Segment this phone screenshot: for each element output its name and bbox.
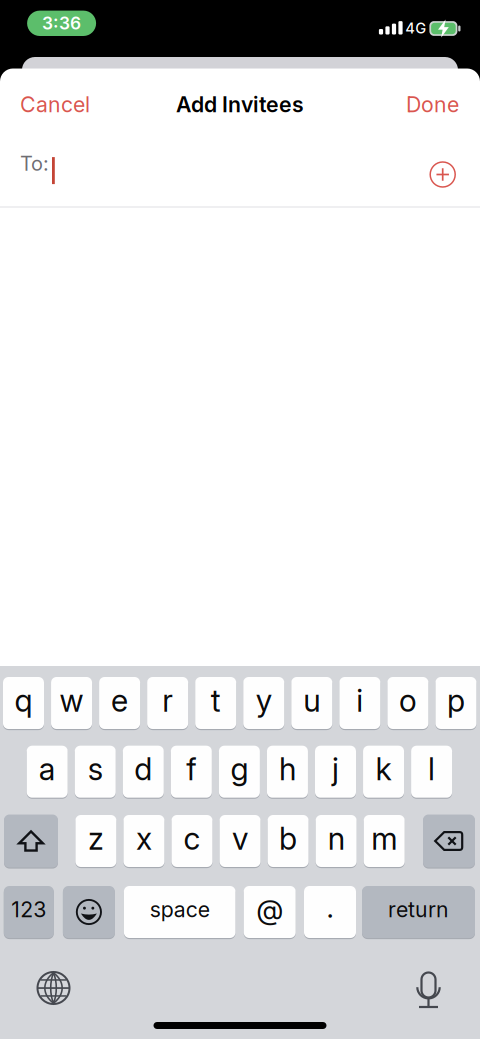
button[interactable]: f xyxy=(171,746,212,798)
staticText: o xyxy=(399,682,417,719)
button[interactable]: b xyxy=(268,815,309,867)
button[interactable]: Done xyxy=(393,82,471,126)
staticText: x xyxy=(136,820,152,857)
staticText: 123 xyxy=(11,897,46,922)
button[interactable]: Delete xyxy=(423,814,475,867)
button[interactable]: i xyxy=(339,677,380,729)
staticText: t xyxy=(211,682,221,719)
button[interactable]: p xyxy=(435,677,476,729)
staticText: n xyxy=(328,820,345,857)
staticText: l xyxy=(428,751,435,788)
button[interactable]: n xyxy=(316,815,357,867)
button[interactable]: e xyxy=(99,677,140,729)
staticText: space xyxy=(150,897,210,922)
button[interactable]: z xyxy=(75,815,116,867)
staticText: @ xyxy=(256,892,283,926)
button[interactable]: u xyxy=(291,677,332,729)
button[interactable]: return xyxy=(362,886,475,938)
staticText: w xyxy=(59,682,83,719)
staticText: Add Invitees xyxy=(176,92,304,117)
staticText: f xyxy=(186,751,196,788)
staticText: Done xyxy=(406,92,459,117)
button[interactable]: @ xyxy=(244,886,296,938)
button[interactable]: c xyxy=(171,815,212,867)
staticText: c xyxy=(183,820,200,857)
button[interactable]: Dictate xyxy=(405,962,451,1008)
button[interactable]: o xyxy=(387,677,428,729)
button[interactable]: s xyxy=(75,746,116,798)
button[interactable]: Add Invitees xyxy=(150,82,330,126)
button[interactable]: y xyxy=(243,677,284,729)
button[interactable]: j xyxy=(315,746,356,798)
staticText: i xyxy=(356,682,363,719)
button[interactable]: h xyxy=(267,746,308,798)
staticText: m xyxy=(371,820,397,857)
button[interactable]: Emoji xyxy=(63,886,115,938)
staticText: . xyxy=(326,891,333,924)
button[interactable]: r xyxy=(147,677,188,729)
button[interactable]: l xyxy=(411,746,452,798)
staticText: g xyxy=(230,751,248,788)
button[interactable]: Cancel xyxy=(12,82,98,126)
button[interactable]: . xyxy=(304,886,356,938)
staticText: p xyxy=(447,682,465,719)
staticText: j xyxy=(332,751,339,788)
button[interactable]: g xyxy=(219,746,260,798)
staticText: b xyxy=(279,820,297,857)
staticText: e xyxy=(111,682,128,719)
button[interactable]: Next keyboard xyxy=(30,965,76,1011)
button[interactable]: w xyxy=(51,677,92,729)
button[interactable]: q xyxy=(3,677,44,729)
staticText: s xyxy=(88,751,103,788)
staticText: v xyxy=(232,820,248,857)
button[interactable]: v xyxy=(219,815,260,867)
button[interactable]: Shift xyxy=(4,814,58,867)
staticText: u xyxy=(303,682,320,719)
staticText: To: xyxy=(20,151,49,176)
staticText: z xyxy=(88,820,104,857)
staticText: a xyxy=(39,751,56,788)
staticText: 3:36 xyxy=(42,13,81,34)
button[interactable]: x xyxy=(123,815,164,867)
staticText: d xyxy=(134,751,152,788)
button[interactable]: a xyxy=(27,746,68,798)
button[interactable]: Add contact xyxy=(421,152,465,196)
staticText: y xyxy=(256,682,272,719)
button[interactable]: 123 xyxy=(4,886,54,938)
button[interactable]: m xyxy=(364,815,405,867)
staticText: k xyxy=(375,751,391,788)
staticText: return xyxy=(388,897,449,922)
staticText: h xyxy=(279,751,296,788)
button[interactable]: d xyxy=(123,746,164,798)
button[interactable]: space xyxy=(124,886,235,938)
staticText: 4G xyxy=(405,19,426,37)
staticText: q xyxy=(14,682,32,719)
button[interactable]: k xyxy=(363,746,404,798)
button[interactable]: t xyxy=(195,677,236,729)
staticText: r xyxy=(162,682,173,719)
staticText: Cancel xyxy=(20,92,90,117)
